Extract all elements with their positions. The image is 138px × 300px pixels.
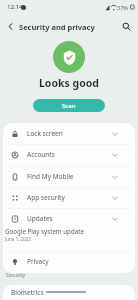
button[interactable]: Updates	[3, 208, 135, 229]
staticText: June 1, 2022	[5, 236, 31, 242]
button[interactable]: Navigate up	[1, 17, 20, 36]
button[interactable]: Lock screen	[3, 123, 135, 144]
button[interactable]: Privacy	[3, 251, 135, 272]
staticText: Security and privacy	[19, 22, 95, 32]
staticText: Updates	[27, 214, 53, 223]
staticText: 12:14	[7, 3, 23, 11]
staticText: Accounts	[27, 150, 55, 159]
button[interactable]: Scan	[33, 99, 105, 112]
button[interactable]: Google Play system update	[3, 223, 135, 245]
staticText: Scan	[62, 102, 76, 110]
staticText: Security	[6, 272, 26, 279]
button[interactable]: App security	[3, 187, 135, 208]
staticText: Biometrics	[11, 288, 44, 297]
button[interactable]: Accounts	[3, 144, 135, 165]
staticText: Lock screen	[27, 129, 63, 138]
staticText: Google Play system update	[5, 227, 84, 235]
staticText: Privacy	[27, 257, 49, 266]
button[interactable]: Find My Mobile	[3, 166, 135, 187]
staticText: Looks good	[39, 76, 99, 90]
staticText: 37%	[117, 4, 128, 11]
button[interactable]: Search	[117, 17, 136, 36]
staticText: Find My Mobile	[27, 172, 74, 181]
staticText: App security	[27, 193, 65, 202]
button[interactable]: Biometrics	[3, 285, 135, 300]
